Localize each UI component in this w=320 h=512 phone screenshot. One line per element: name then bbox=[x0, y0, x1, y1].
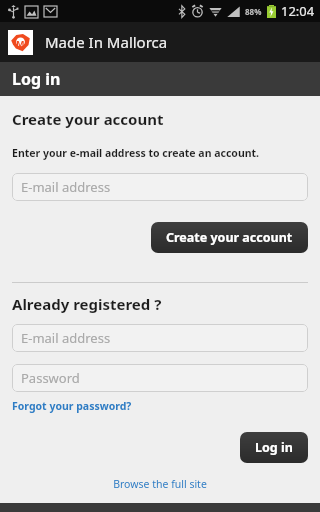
staticText: Password bbox=[21, 369, 80, 387]
staticText: Log in bbox=[12, 68, 61, 90]
staticText: Log in bbox=[255, 439, 293, 456]
staticText: Already registered ? bbox=[12, 294, 162, 314]
staticText: E-mail address bbox=[21, 178, 111, 196]
staticText: M bbox=[16, 37, 25, 49]
button[interactable]: M bbox=[0, 22, 320, 62]
button[interactable]: Log in bbox=[240, 432, 308, 463]
button[interactable]: Password bbox=[12, 364, 308, 392]
staticText: Enter your e-mail address to create an a… bbox=[12, 146, 260, 160]
staticText: Forgot your password? bbox=[12, 399, 132, 413]
button[interactable]: Create your account bbox=[151, 222, 308, 253]
staticText: Create your account bbox=[166, 229, 293, 246]
staticText: 88% bbox=[245, 6, 262, 17]
staticText: Made In Mallorca bbox=[45, 32, 168, 52]
button[interactable]: Log in bbox=[0, 62, 320, 96]
staticText: Create your account bbox=[12, 109, 164, 129]
button[interactable]: Forgot your password? bbox=[12, 399, 132, 413]
button[interactable]: Browse the full site bbox=[12, 477, 308, 491]
staticText: E-mail address bbox=[21, 329, 111, 347]
button[interactable]: E-mail address bbox=[12, 324, 308, 352]
button[interactable]: E-mail address bbox=[12, 173, 308, 201]
staticText: 12:04 bbox=[281, 2, 315, 20]
staticText: Browse the full site bbox=[113, 477, 207, 491]
